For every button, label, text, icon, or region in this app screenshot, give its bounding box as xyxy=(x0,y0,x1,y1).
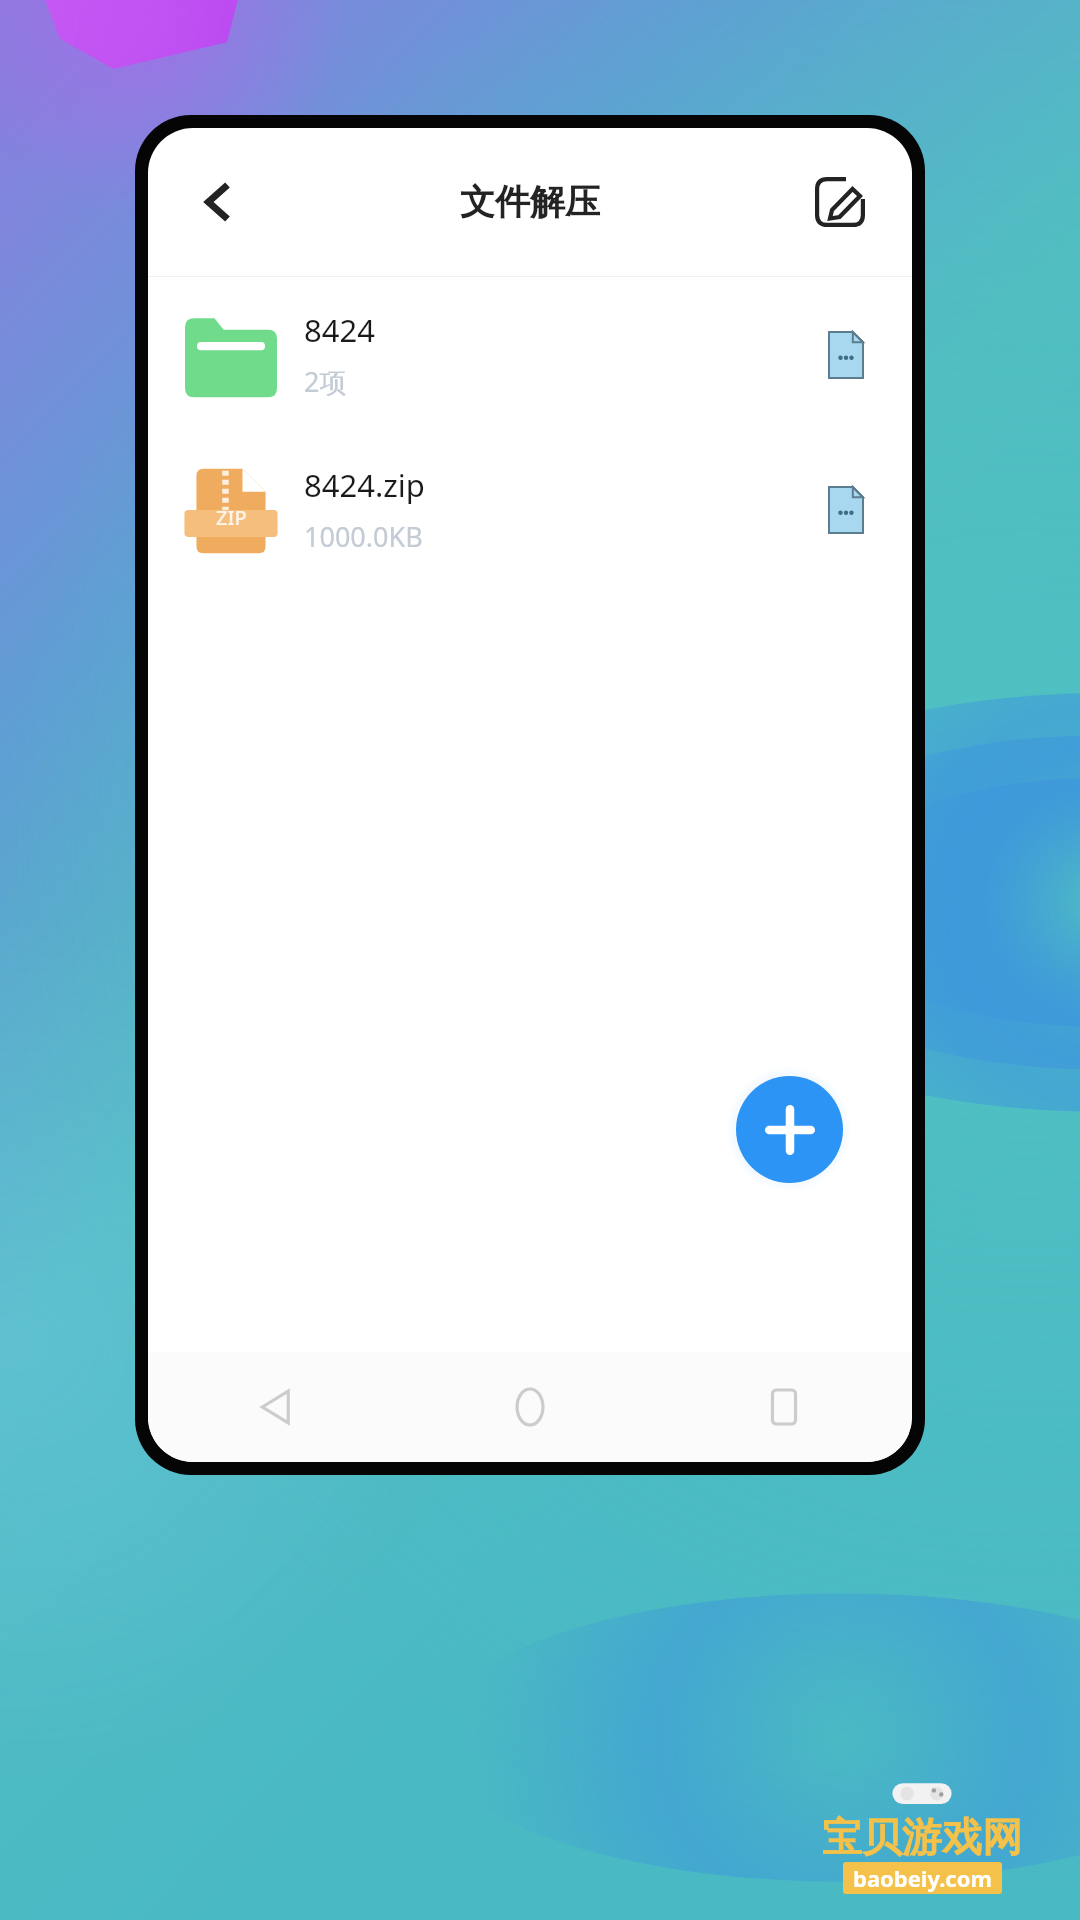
staticText: baobeiy.com xyxy=(853,1863,992,1893)
button[interactable]: Back xyxy=(238,1369,314,1445)
button[interactable]: Recents xyxy=(746,1369,822,1445)
button[interactable]: ZIP xyxy=(148,432,912,587)
button[interactable]: More options xyxy=(814,323,878,387)
staticText: 宝贝游戏网 xyxy=(822,1812,1022,1862)
button[interactable]: 8424 xyxy=(148,277,912,432)
staticText: 8424 xyxy=(304,309,375,351)
staticText: 8424.zip xyxy=(304,464,425,506)
staticText: 文件解压 xyxy=(460,180,600,224)
button[interactable]: Home xyxy=(492,1369,568,1445)
button[interactable]: Back xyxy=(184,166,256,238)
staticText: 1000.0KB xyxy=(304,518,423,555)
button[interactable]: More options xyxy=(814,478,878,542)
button[interactable]: Add xyxy=(736,1076,843,1183)
staticText: ZIP xyxy=(216,504,247,531)
staticText: 2项 xyxy=(304,363,347,400)
button[interactable]: Edit xyxy=(802,164,878,240)
